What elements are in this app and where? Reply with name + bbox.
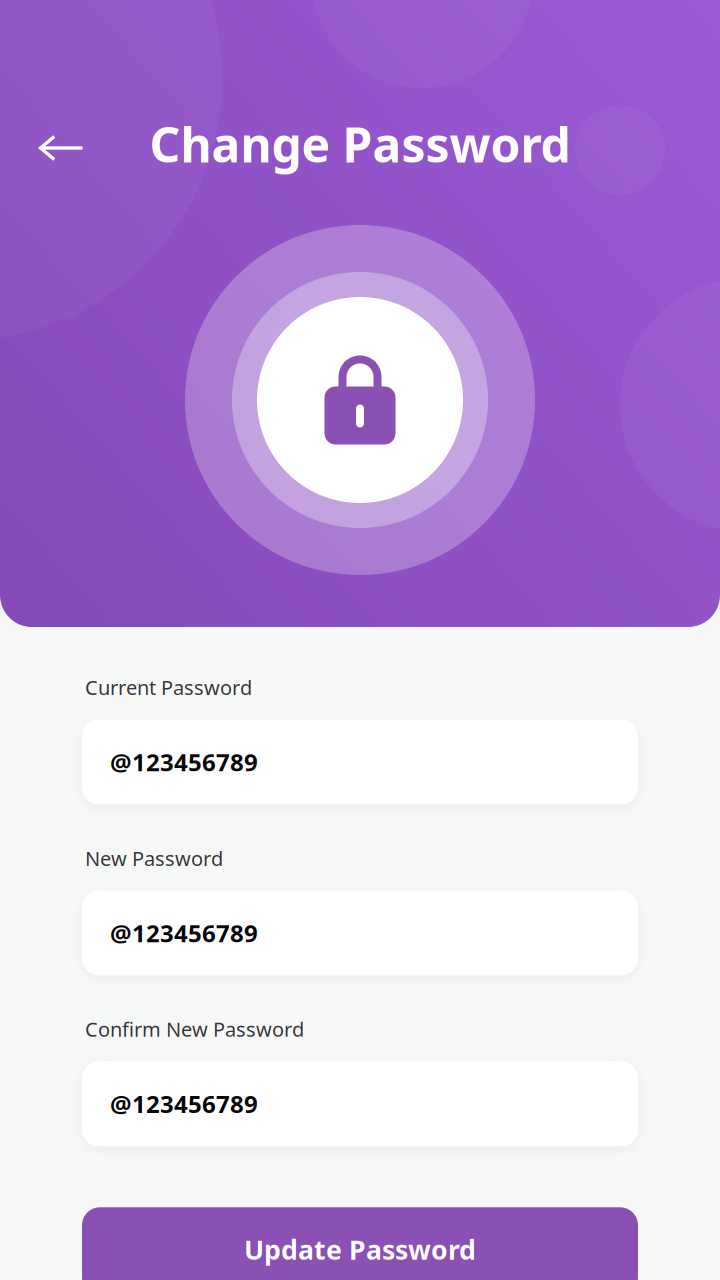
- staticText: @123456789: [110, 1088, 258, 1120]
- button[interactable]: @123456789: [82, 890, 638, 975]
- button[interactable]: @123456789: [82, 720, 638, 805]
- button[interactable]: Back: [28, 115, 94, 181]
- button[interactable]: @123456789: [82, 1061, 638, 1146]
- staticText: @123456789: [110, 746, 258, 778]
- button[interactable]: Update Password: [82, 1207, 638, 1280]
- staticText: Current Password: [85, 674, 252, 701]
- staticText: New Password: [85, 845, 223, 871]
- staticText: Update Password: [244, 1232, 476, 1267]
- staticText: @123456789: [110, 917, 258, 949]
- staticText: Confirm New Password: [85, 1016, 304, 1042]
- staticText: Change Password: [149, 112, 570, 176]
